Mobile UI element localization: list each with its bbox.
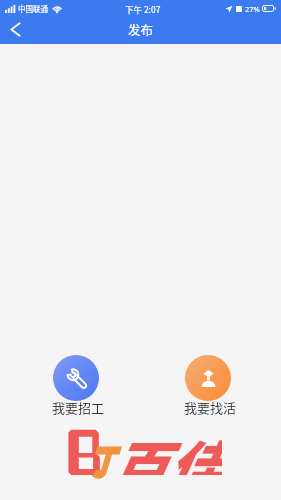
staticText: 百佳: [108, 423, 222, 475]
staticText: 我要找活: [184, 398, 237, 417]
staticText: 我要招工: [52, 398, 105, 417]
button[interactable]: 我要招工: [49, 355, 102, 420]
staticText: 中国联通: [18, 3, 48, 14]
button[interactable]: 返回: [0, 17, 30, 44]
staticText: 27%: [245, 4, 260, 14]
button[interactable]: 我要找活: [181, 355, 234, 420]
staticText: 发布: [128, 20, 154, 38]
staticText: 下午 2:07: [125, 3, 161, 15]
